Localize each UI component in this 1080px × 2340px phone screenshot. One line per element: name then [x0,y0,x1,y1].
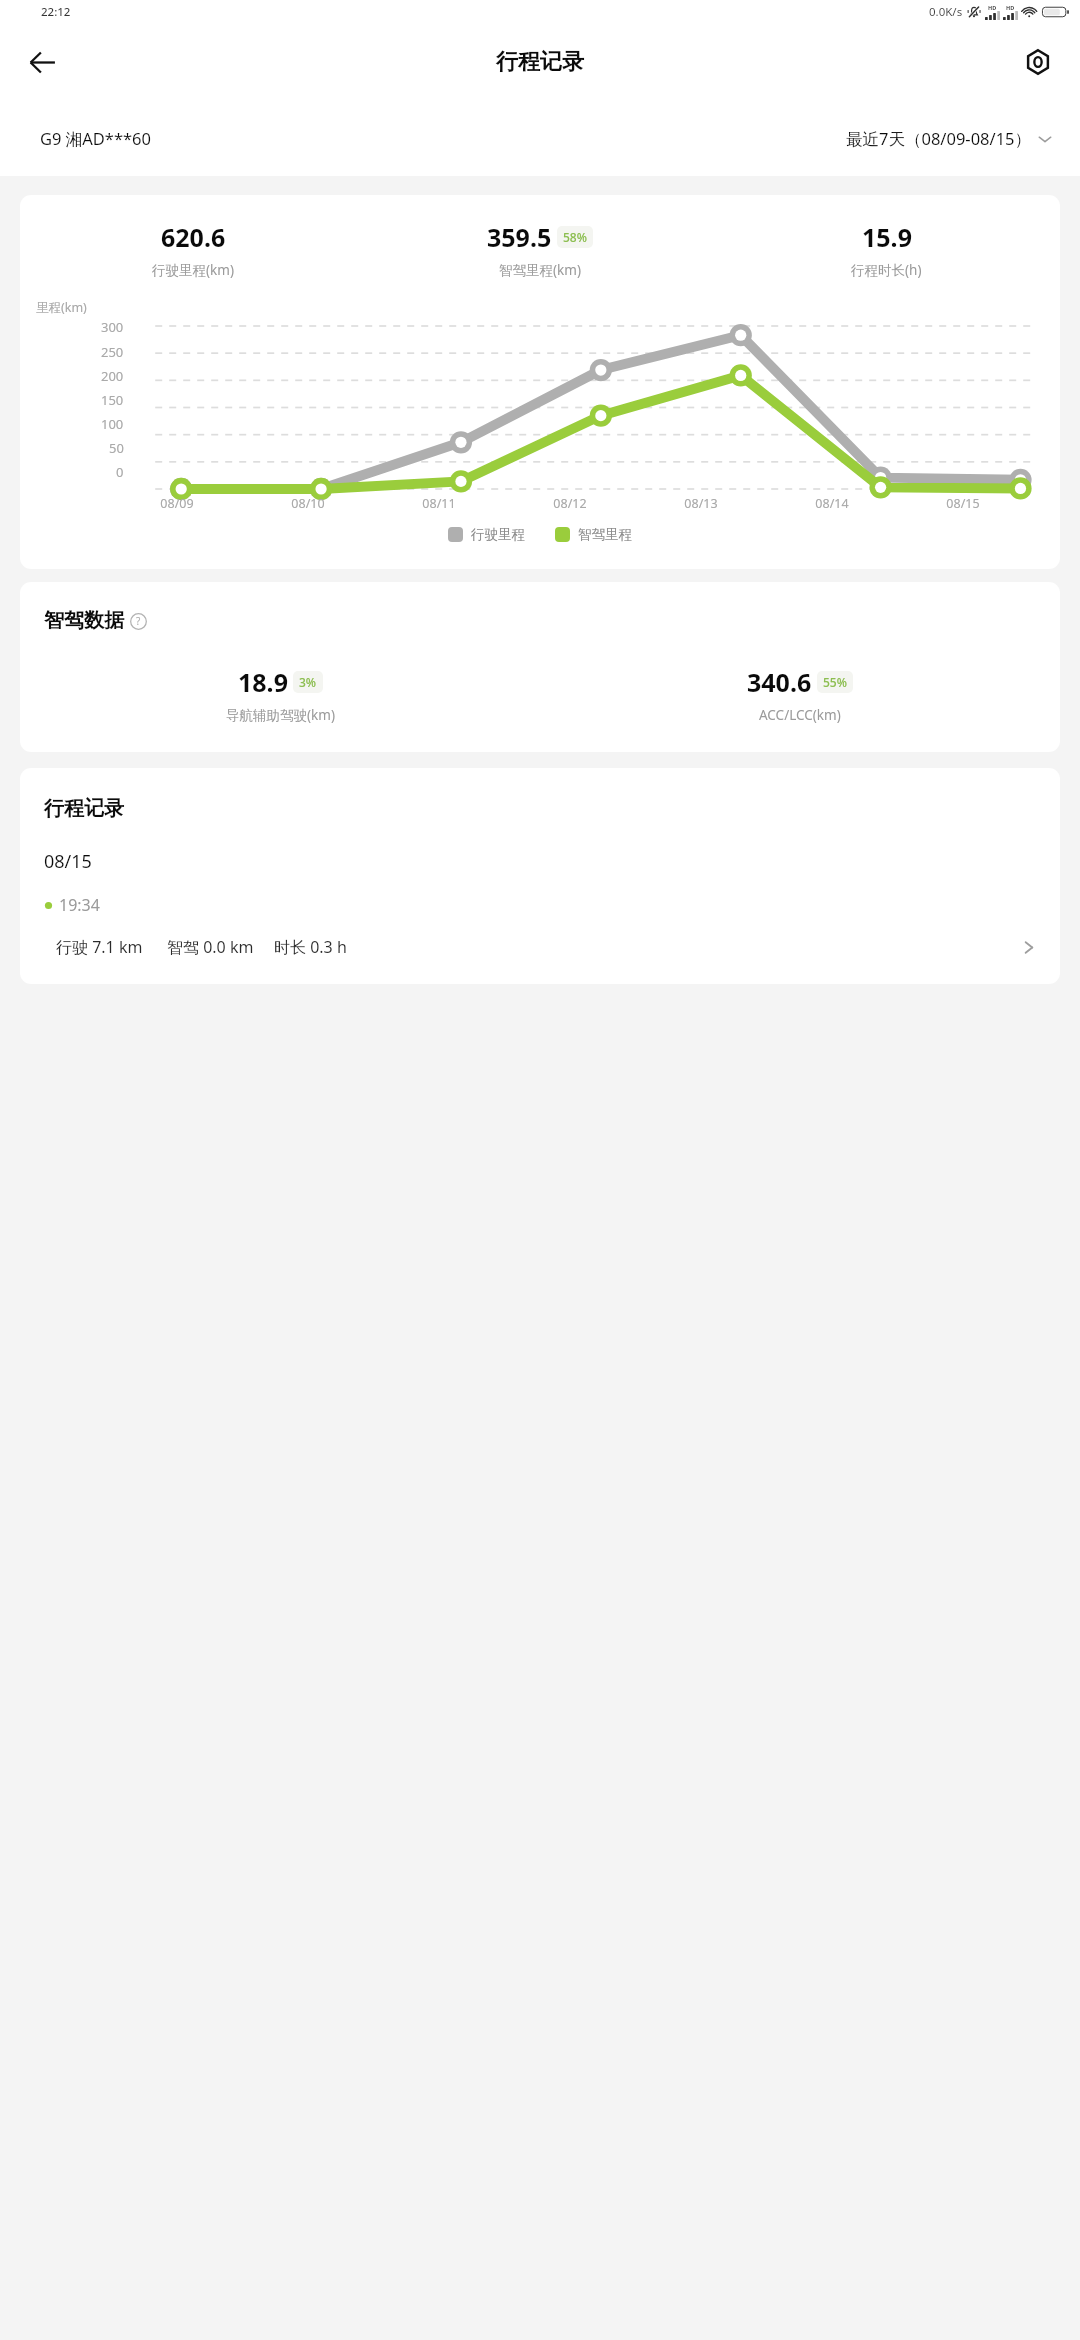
staticText: 0.0K/s [929,4,963,20]
staticText: 行驶里程(km) [152,261,234,279]
staticText: 智驾里程(km) [499,261,581,279]
button[interactable]: 620.6 [20,220,366,279]
staticText: 行驶里程 [471,526,525,543]
button[interactable]: 最近7天（08/09-08/15） [846,127,1054,150]
staticText: 15.9 [862,220,912,254]
staticText: HD [988,4,997,11]
staticText: 最近7天（08/09-08/15） [846,127,1032,150]
staticText: 50 [109,439,124,457]
staticText: 19:34 [59,894,100,916]
staticText: ? [136,614,141,628]
staticText: 200 [101,367,124,385]
staticText: 里程(km) [36,299,87,316]
button[interactable]: 340.6 [540,665,1060,724]
button[interactable]: 行驶里程 [448,526,525,543]
staticText: 08/10 [291,495,325,512]
staticText: 22:12 [41,4,71,20]
staticText: 3% [299,674,317,690]
staticText: 150 [101,391,124,409]
button[interactable]: Info [127,610,149,632]
staticText: 08/14 [815,495,849,512]
staticText: 行驶 7.1 km [56,936,143,958]
staticText: 08/15 [946,495,980,512]
staticText: 智驾数据 [44,608,124,633]
button[interactable]: Settings [1010,34,1066,90]
staticText: 359.5 [487,220,552,254]
staticText: 智驾 0.0 km [167,936,254,958]
staticText: HD [1006,4,1015,11]
staticText: 300 [101,318,124,336]
staticText: 100 [101,415,124,433]
staticText: 58% [563,229,587,245]
staticText: ACC/LCC(km) [759,706,841,724]
staticText: 行程记录 [44,796,124,821]
button[interactable]: 15.9 [713,220,1060,279]
button[interactable]: 智驾里程 [555,526,632,543]
staticText: 340.6 [747,665,812,699]
staticText: G9 湘AD***60 [40,127,151,150]
staticText: 250 [101,343,124,361]
staticText: 18.9 [238,665,288,699]
staticText: 08/15 [44,849,92,874]
staticText: 08/09 [160,495,194,512]
staticText: 智驾里程 [578,526,632,543]
button[interactable]: 19:34 [20,894,1060,984]
button[interactable]: Back [14,34,70,90]
staticText: 行程记录 [496,48,584,76]
staticText: 08/13 [684,495,718,512]
staticText: 导航辅助驾驶(km) [226,706,335,724]
staticText: 08/12 [553,495,587,512]
button[interactable]: 359.5 [366,220,713,279]
staticText: 行程时长(h) [851,261,922,279]
staticText: 620.6 [161,220,226,254]
staticText: 55% [823,674,847,690]
staticText: 08/11 [422,495,456,512]
button[interactable]: G9 湘AD***60 [40,127,151,150]
staticText: 0 [116,463,124,481]
staticText: 时长 0.3 h [274,936,347,958]
button[interactable]: 18.9 [20,665,540,724]
